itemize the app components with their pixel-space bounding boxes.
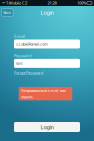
button[interactable]: Back	[1, 9, 13, 16]
staticText: Back	[3, 10, 11, 15]
staticText: test	[16, 61, 22, 66]
staticText: •••	[2, 1, 5, 5]
staticText: Forgot Password	[14, 70, 43, 75]
staticText: Login	[40, 123, 53, 131]
staticText: cz.dpa@gmail.com	[16, 41, 47, 46]
staticText: E-mail	[14, 33, 25, 39]
staticText: 100%	[77, 0, 86, 6]
staticText: Неправильный e-mail или	[21, 88, 66, 93]
staticText: Login	[40, 9, 53, 16]
staticText: Password	[14, 53, 31, 58]
staticText: пароль.	[21, 94, 34, 99]
staticText: 21:28	[48, 0, 57, 6]
button[interactable]: Forgot Password	[14, 70, 43, 75]
button[interactable]: Login	[14, 122, 80, 132]
staticText: T-Mobile CZ	[5, 0, 27, 6]
